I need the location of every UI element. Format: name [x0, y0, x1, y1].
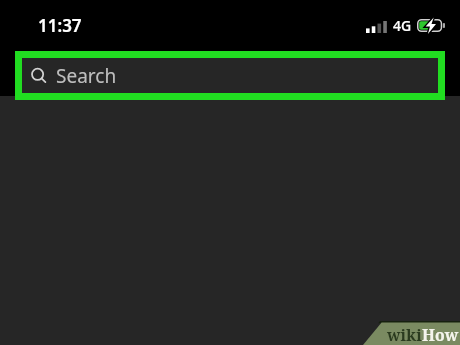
- staticText: wiki: [387, 324, 422, 345]
- button[interactable]: Search: [22, 58, 438, 93]
- staticText: 4G: [393, 16, 412, 35]
- staticText: 11:37: [38, 14, 82, 37]
- other: Search: [32, 68, 46, 83]
- staticText: How: [422, 324, 459, 345]
- staticText: Search: [56, 63, 117, 89]
